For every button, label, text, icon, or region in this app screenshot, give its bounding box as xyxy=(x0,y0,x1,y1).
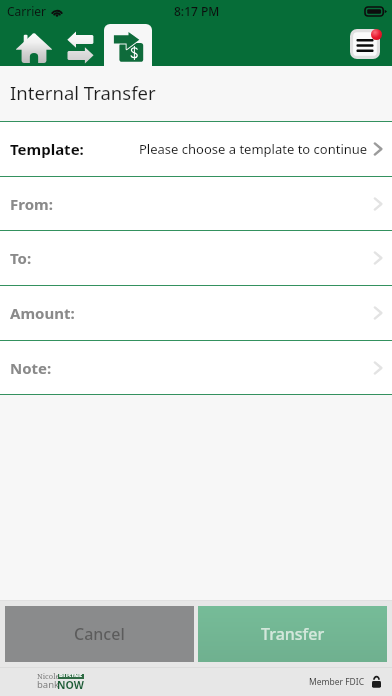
button[interactable]: From: xyxy=(0,177,392,230)
button[interactable]: Transfer xyxy=(198,606,387,662)
button[interactable]: Note: xyxy=(0,341,392,394)
button[interactable]: To: xyxy=(0,231,392,285)
staticText: bank xyxy=(37,678,60,691)
button[interactable]: Transfers xyxy=(62,22,104,66)
staticText: Internal Transfer xyxy=(10,80,156,105)
staticText: Carrier xyxy=(7,3,47,19)
staticText: NOW xyxy=(57,678,84,692)
staticText: Please choose a template to continue xyxy=(139,140,368,158)
staticText: BUSINESS xyxy=(59,672,85,677)
staticText: From: xyxy=(10,194,53,214)
button[interactable]: Home xyxy=(4,22,62,66)
staticText: Template: xyxy=(10,139,84,159)
staticText: Nicolet xyxy=(37,671,63,681)
staticText: To: xyxy=(10,248,32,268)
button[interactable]: Amount: xyxy=(0,286,392,340)
staticText: Transfer xyxy=(261,623,325,645)
staticText: 8:17 PM xyxy=(174,3,220,19)
button[interactable]: Internal Transfer xyxy=(104,24,152,66)
staticText: Member FDIC xyxy=(309,676,365,688)
staticText: Note: xyxy=(10,358,52,378)
button[interactable]: Template: xyxy=(0,122,392,176)
staticText: Cancel xyxy=(74,623,125,645)
button[interactable]: Menu xyxy=(350,29,386,61)
staticText: Amount: xyxy=(10,303,75,323)
button[interactable]: Cancel xyxy=(5,606,194,662)
